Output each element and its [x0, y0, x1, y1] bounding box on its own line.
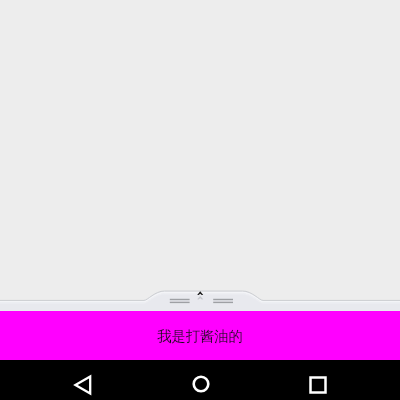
button[interactable]: Recent apps: [296, 363, 340, 400]
button[interactable]: Hide keyboard: [0, 286, 400, 311]
staticText: 我是打酱油的: [157, 327, 243, 345]
button[interactable]: 我是打酱油的: [0, 311, 400, 360]
button[interactable]: Home: [179, 364, 223, 400]
button[interactable]: Back: [61, 365, 105, 400]
